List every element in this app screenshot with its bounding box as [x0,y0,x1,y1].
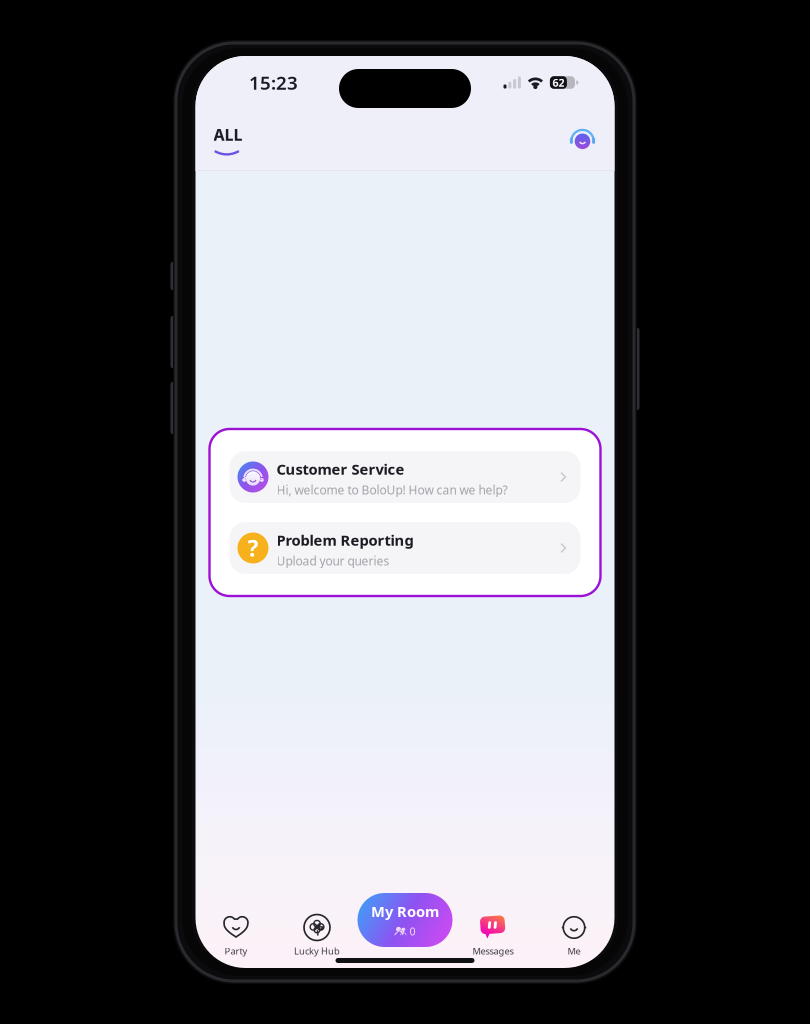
staticText: Problem Reporting [276,530,413,550]
staticText: Me [567,945,580,957]
staticText: ALL [213,124,242,145]
button[interactable]: Lucky Hub [276,888,357,956]
button[interactable]: My Room [357,893,452,947]
staticText: Messages [472,945,513,957]
staticText: My Room [371,902,439,921]
staticText: ? [247,533,258,563]
staticText: Lucky Hub [294,945,340,957]
button[interactable]: Customer Service [229,451,580,503]
staticText: Party [224,945,247,957]
button[interactable]: ALL [195,115,258,164]
staticText: Customer Service [276,459,404,479]
button[interactable]: Customer service [569,119,614,159]
staticText: 0 [409,924,415,938]
button[interactable]: Messages [452,888,533,956]
button[interactable]: ? [229,522,580,574]
staticText: 15:23 [249,70,298,95]
staticText: Upload your queries [276,553,389,569]
button[interactable]: Party [195,888,276,956]
staticText: Hi, welcome to BoloUp! How can we help? [276,482,507,498]
button[interactable]: Me [533,888,614,956]
staticText: 62 [552,75,564,90]
